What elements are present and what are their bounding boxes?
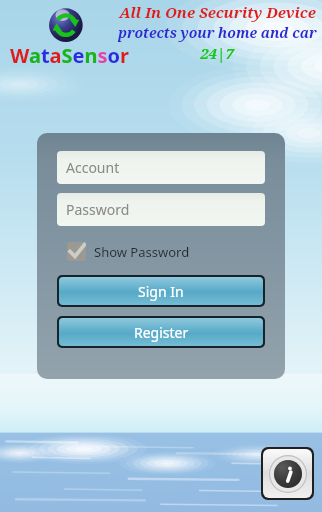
staticText: WataSensor [10,42,130,69]
staticText: Password [66,200,130,219]
staticText: Register [134,323,189,342]
button[interactable]: Show Password [65,240,192,263]
staticText: Show Password [94,243,190,261]
button[interactable]: Register [59,318,263,346]
staticText: protects your home and car [118,23,317,42]
staticText: Sign In [138,282,184,301]
button[interactable]: Information [263,449,312,498]
staticText: 24|7 [200,43,234,63]
button[interactable]: Password [57,193,265,226]
button[interactable]: Sign In [59,277,263,305]
staticText: Account [66,158,120,177]
staticText: All In One Security Device [119,2,316,22]
button[interactable]: Account [57,151,265,184]
